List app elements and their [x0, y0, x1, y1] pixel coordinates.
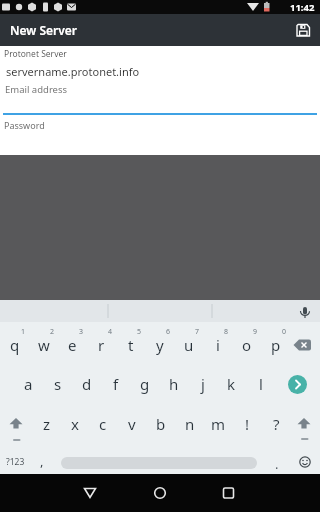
staticText: !	[245, 414, 250, 434]
staticText: .	[275, 455, 279, 473]
button[interactable]: 4	[87, 322, 116, 364]
staticText: z	[43, 414, 51, 434]
staticText: b	[156, 414, 166, 434]
staticText: s	[54, 374, 62, 394]
staticText: v	[128, 414, 136, 434]
staticText: 3	[79, 327, 84, 337]
staticText: 9	[253, 327, 258, 337]
button[interactable]: l	[246, 364, 275, 404]
staticText: 6	[166, 327, 171, 337]
staticText: f	[113, 374, 119, 394]
staticText: 2	[50, 327, 55, 337]
button[interactable]: v	[117, 404, 146, 442]
staticText: Protonet Server	[4, 48, 67, 60]
staticText: ?123	[6, 456, 25, 468]
button[interactable]: n	[175, 404, 204, 442]
button[interactable]: ,	[32, 442, 52, 474]
button[interactable]: g	[130, 364, 159, 404]
staticText: i	[216, 335, 220, 355]
button[interactable]	[295, 452, 315, 472]
staticText: w	[38, 335, 50, 355]
button[interactable]: 3	[58, 322, 87, 364]
staticText: m	[211, 414, 226, 434]
staticText: j	[201, 374, 205, 394]
staticText: e	[68, 335, 77, 355]
staticText: n	[185, 414, 195, 434]
button[interactable]: Password	[4, 119, 45, 131]
button[interactable]: ?123	[0, 442, 30, 474]
staticText: ?	[273, 414, 280, 434]
button[interactable]	[291, 337, 313, 353]
button[interactable]: f	[101, 364, 130, 404]
button[interactable]	[290, 410, 318, 436]
button[interactable]: 9	[232, 322, 261, 364]
button[interactable]: c	[89, 404, 117, 442]
staticText: p	[271, 335, 281, 355]
button[interactable]	[210, 474, 250, 512]
staticText: c	[99, 414, 107, 434]
staticText: ,	[40, 452, 44, 470]
staticText: 8	[224, 327, 229, 337]
staticText: h	[169, 374, 179, 394]
staticText: r	[98, 335, 105, 355]
button[interactable]: z	[33, 404, 61, 442]
staticText: l	[259, 374, 263, 394]
button[interactable]: 7	[174, 322, 203, 364]
staticText: 4	[108, 327, 113, 337]
button[interactable]	[70, 474, 110, 512]
staticText: y	[156, 335, 164, 355]
staticText: 0	[282, 327, 287, 337]
staticText: 11:42	[290, 1, 315, 14]
staticText: x	[71, 414, 79, 434]
button[interactable]: h	[159, 364, 188, 404]
button[interactable]	[290, 17, 316, 43]
button[interactable]: 2	[29, 322, 58, 364]
button[interactable]	[0, 300, 320, 322]
button[interactable]: d	[72, 364, 101, 404]
button[interactable]: Email address	[5, 83, 68, 96]
button[interactable]: servername.protonet.info	[6, 64, 140, 79]
staticText: u	[184, 335, 194, 355]
button[interactable]: s	[43, 364, 72, 404]
button[interactable]: 0	[261, 322, 290, 364]
staticText: d	[82, 374, 92, 394]
staticText: q	[10, 335, 20, 355]
button[interactable]: a	[14, 364, 43, 404]
staticText: t	[128, 335, 134, 355]
button[interactable]	[140, 474, 180, 512]
button[interactable]: 8	[203, 322, 232, 364]
button[interactable]: ?	[262, 404, 291, 442]
button[interactable]: m	[204, 404, 233, 442]
staticText: New Server	[10, 22, 77, 38]
button[interactable]: 1	[0, 322, 29, 364]
button[interactable]: x	[61, 404, 89, 442]
staticText: 5	[137, 327, 142, 337]
button[interactable]: b	[146, 404, 175, 442]
button[interactable]: .	[267, 442, 287, 474]
button[interactable]: 5	[116, 322, 145, 364]
button[interactable]	[288, 375, 307, 394]
staticText: 1	[21, 327, 26, 337]
staticText: k	[227, 374, 236, 394]
staticText: o	[242, 335, 252, 355]
button[interactable]: j	[188, 364, 217, 404]
staticText: 7	[195, 327, 200, 337]
staticText: g	[140, 374, 150, 394]
staticText: a	[24, 374, 33, 394]
button[interactable]: 6	[145, 322, 174, 364]
button[interactable]: k	[217, 364, 246, 404]
button[interactable]	[2, 410, 30, 436]
button[interactable]: !	[233, 404, 262, 442]
